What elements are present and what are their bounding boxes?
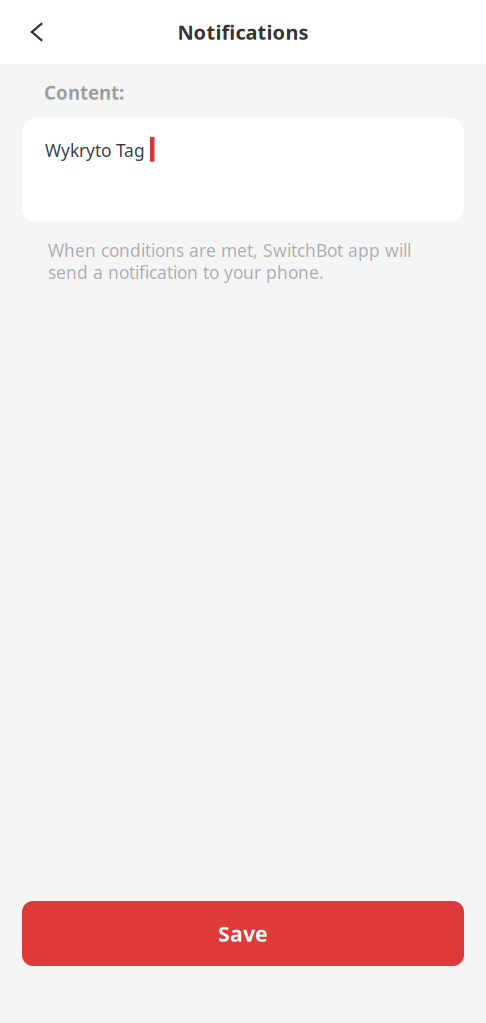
staticText: Wykryto Tag xyxy=(45,139,145,162)
staticText: Save xyxy=(218,919,268,948)
staticText: Content: xyxy=(44,80,124,105)
staticText: When conditions are met, SwitchBot app w… xyxy=(48,239,411,284)
button[interactable]: Save xyxy=(22,901,464,966)
button[interactable]: Back xyxy=(0,4,65,60)
staticText: Notifications xyxy=(177,19,308,45)
button[interactable]: Wykryto Tag xyxy=(22,118,464,222)
